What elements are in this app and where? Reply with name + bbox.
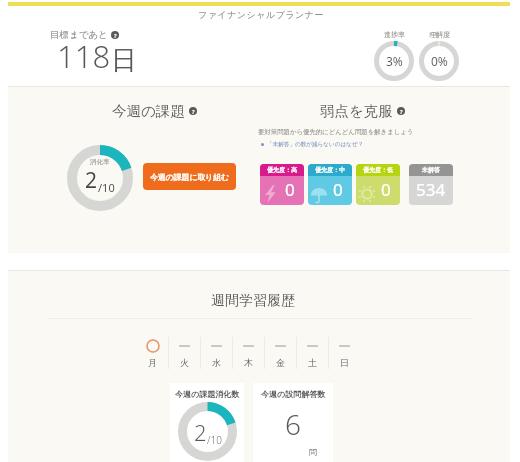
button[interactable]: 「未解答」の数が減らないのはなぜ？: [261, 141, 364, 148]
staticText: 要対策問題から優先的にどんどん問題を解きましょう: [258, 128, 414, 136]
button[interactable]: 優先度：中: [308, 164, 352, 205]
staticText: 2: [85, 166, 98, 195]
staticText: 534: [416, 178, 446, 201]
button[interactable]: 優先度：低: [356, 164, 400, 205]
button[interactable]: 水: [201, 337, 232, 368]
staticText: 0%: [431, 53, 448, 69]
staticText: ?: [400, 108, 403, 115]
staticText: 金: [276, 357, 285, 368]
staticText: 優先度：高: [267, 166, 297, 174]
staticText: 弱点を克服: [320, 102, 393, 120]
staticText: 今週の課題に取り組む: [150, 172, 229, 182]
staticText: 6: [285, 405, 301, 443]
staticText: 消化率: [90, 158, 110, 166]
staticText: ?: [192, 108, 195, 115]
button[interactable]: Help: [397, 107, 405, 115]
staticText: /10: [98, 180, 115, 195]
button[interactable]: 土: [297, 337, 328, 368]
button[interactable]: 今週の課題消化数: [170, 383, 244, 462]
staticText: 問: [309, 447, 317, 457]
staticText: /10: [207, 433, 222, 447]
button[interactable]: 月: [137, 337, 168, 368]
staticText: 日: [111, 44, 137, 77]
staticText: 今週の設問解答数: [261, 389, 326, 399]
staticText: 火: [180, 357, 189, 368]
staticText: 優先度：中: [315, 166, 345, 174]
staticText: 土: [308, 357, 317, 368]
staticText: 水: [212, 357, 221, 368]
staticText: ?: [114, 32, 117, 39]
staticText: 今週の課題消化数: [175, 389, 240, 399]
staticText: 0: [285, 178, 295, 201]
button[interactable]: 日: [329, 337, 360, 368]
staticText: 未解答: [422, 166, 440, 174]
staticText: 118: [57, 35, 111, 77]
staticText: 2: [194, 417, 207, 447]
staticText: 「未解答」の数が減らないのはなぜ？: [267, 141, 364, 148]
staticText: 優先度：低: [363, 166, 393, 174]
button[interactable]: Help: [111, 31, 119, 39]
staticText: 目標まであと: [50, 29, 108, 41]
button[interactable]: 未解答: [409, 164, 453, 205]
staticText: 0: [333, 178, 343, 201]
button[interactable]: 優先度：高: [260, 164, 304, 205]
button[interactable]: 今週の設問解答数: [253, 383, 333, 462]
button[interactable]: 木: [233, 337, 264, 368]
staticText: 3%: [386, 53, 403, 69]
staticText: 木: [244, 357, 253, 368]
staticText: 日: [340, 357, 349, 368]
button[interactable]: Help: [189, 107, 197, 115]
staticText: 週間学習履歴: [211, 292, 295, 310]
staticText: 今週の課題: [112, 102, 185, 120]
staticText: 理解度: [429, 30, 450, 39]
button[interactable]: 金: [265, 337, 296, 368]
staticText: 進捗率: [384, 30, 405, 39]
staticText: 0: [381, 178, 391, 201]
button[interactable]: 今週の課題に取り組む: [143, 163, 236, 190]
staticText: 月: [148, 357, 157, 368]
staticText: ファイナンシャルプランナー: [198, 9, 325, 20]
button[interactable]: 火: [169, 337, 200, 368]
